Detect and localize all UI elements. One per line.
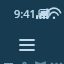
staticText: 9:41 xyxy=(14,6,36,21)
button[interactable]: Menu xyxy=(12,30,42,60)
